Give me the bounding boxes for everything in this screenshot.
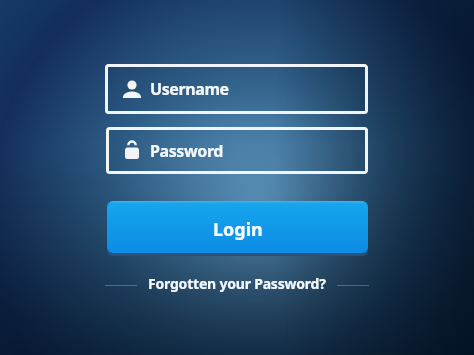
button[interactable]: Forgotten your Password? [0,271,474,295]
staticText: Username [150,78,229,100]
staticText: Password [150,140,224,162]
button[interactable]: Login [107,201,368,253]
button[interactable]: Username [105,64,368,114]
button[interactable]: Password [106,127,368,174]
staticText: Login [213,217,263,242]
staticText: Forgotten your Password? [148,274,326,293]
